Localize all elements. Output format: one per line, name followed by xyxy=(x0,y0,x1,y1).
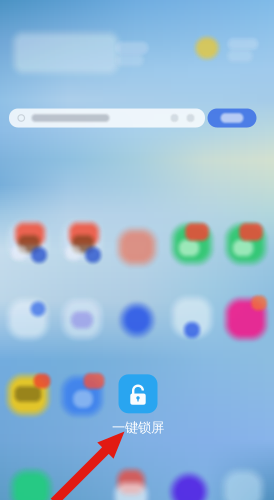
button[interactable]: 一键锁屏 xyxy=(110,374,166,436)
button[interactable]: Search xyxy=(207,108,256,127)
button[interactable] xyxy=(9,108,205,127)
staticText: 一键锁屏 xyxy=(112,419,164,436)
